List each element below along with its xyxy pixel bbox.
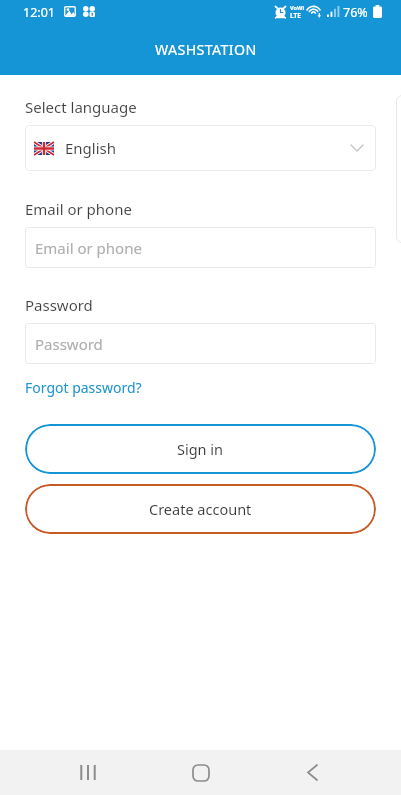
staticText: Password: [35, 334, 103, 354]
staticText: 12:01: [23, 4, 55, 21]
button[interactable]: Back: [288, 750, 336, 795]
staticText: Email or phone: [25, 199, 132, 219]
staticText: Select language: [25, 97, 137, 117]
staticText: LTE: [290, 11, 302, 20]
button[interactable]: Home: [177, 750, 225, 795]
staticText: Password: [25, 295, 93, 315]
button[interactable]: Create account: [25, 484, 376, 534]
button[interactable]: Password: [25, 323, 376, 364]
staticText: WASHSTATION: [155, 40, 257, 59]
staticText: Create account: [149, 499, 252, 519]
button[interactable]: Forgot password?: [25, 377, 142, 396]
staticText: 76%: [343, 4, 368, 21]
staticText: Email or phone: [35, 238, 142, 258]
staticText: English: [65, 138, 117, 158]
button[interactable]: English: [25, 125, 376, 171]
button[interactable]: Email or phone: [25, 227, 376, 268]
staticText: VoWi: [290, 4, 305, 12]
button[interactable]: Sign in: [25, 424, 376, 474]
staticText: Sign in: [177, 439, 224, 459]
button[interactable]: Recents: [64, 750, 112, 795]
